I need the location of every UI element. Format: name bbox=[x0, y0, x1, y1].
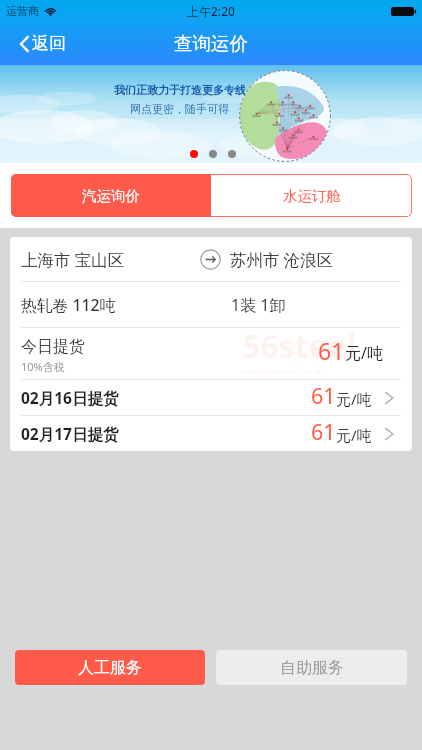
button[interactable]: 汽运询价 bbox=[11, 174, 211, 217]
staticText: 查询运价 bbox=[174, 32, 248, 55]
staticText: 苏州市 沧浪区 bbox=[230, 248, 334, 271]
staticText: 中国钢材现货电子交易 bbox=[242, 368, 322, 375]
staticText: 运营商 bbox=[6, 4, 39, 18]
staticText: 56steel bbox=[242, 324, 357, 368]
staticText: 1装 1卸 bbox=[231, 294, 286, 316]
staticText: 元/吨 bbox=[336, 389, 372, 409]
button[interactable]: 水运订舱 bbox=[211, 174, 412, 217]
staticText: 61 bbox=[318, 335, 345, 366]
staticText: 网点更密，随手可得 bbox=[130, 102, 229, 116]
staticText: 水运订舱 bbox=[283, 187, 341, 205]
staticText: 人工服务 bbox=[78, 658, 142, 678]
button[interactable]: 02月17日提货 bbox=[10, 416, 412, 451]
staticText: 我们正致力于打造更多专线 bbox=[114, 83, 245, 97]
staticText: 02月16日提货 bbox=[21, 387, 119, 408]
staticText: 上海市 宝山区 bbox=[21, 248, 125, 271]
staticText: 上午2:20 bbox=[187, 3, 235, 19]
staticText: 元/吨 bbox=[345, 342, 383, 364]
staticText: 热轧卷 112吨 bbox=[21, 294, 116, 316]
staticText: 61 bbox=[311, 381, 336, 410]
staticText: 元/吨 bbox=[336, 425, 372, 445]
staticText: 61 bbox=[311, 417, 336, 446]
staticText: 今日提货 bbox=[21, 337, 85, 357]
staticText: 返回 bbox=[32, 33, 66, 54]
staticText: 汽运询价 bbox=[82, 187, 140, 205]
staticText: 10%含税 bbox=[21, 359, 65, 374]
staticText: 02月17日提货 bbox=[21, 423, 119, 444]
button[interactable]: 人工服务 bbox=[15, 650, 205, 685]
button[interactable]: 02月16日提货 bbox=[10, 380, 412, 415]
staticText: 自助服务 bbox=[280, 658, 344, 678]
button[interactable]: 返回 bbox=[0, 22, 80, 65]
button[interactable]: 自助服务 bbox=[216, 650, 407, 685]
